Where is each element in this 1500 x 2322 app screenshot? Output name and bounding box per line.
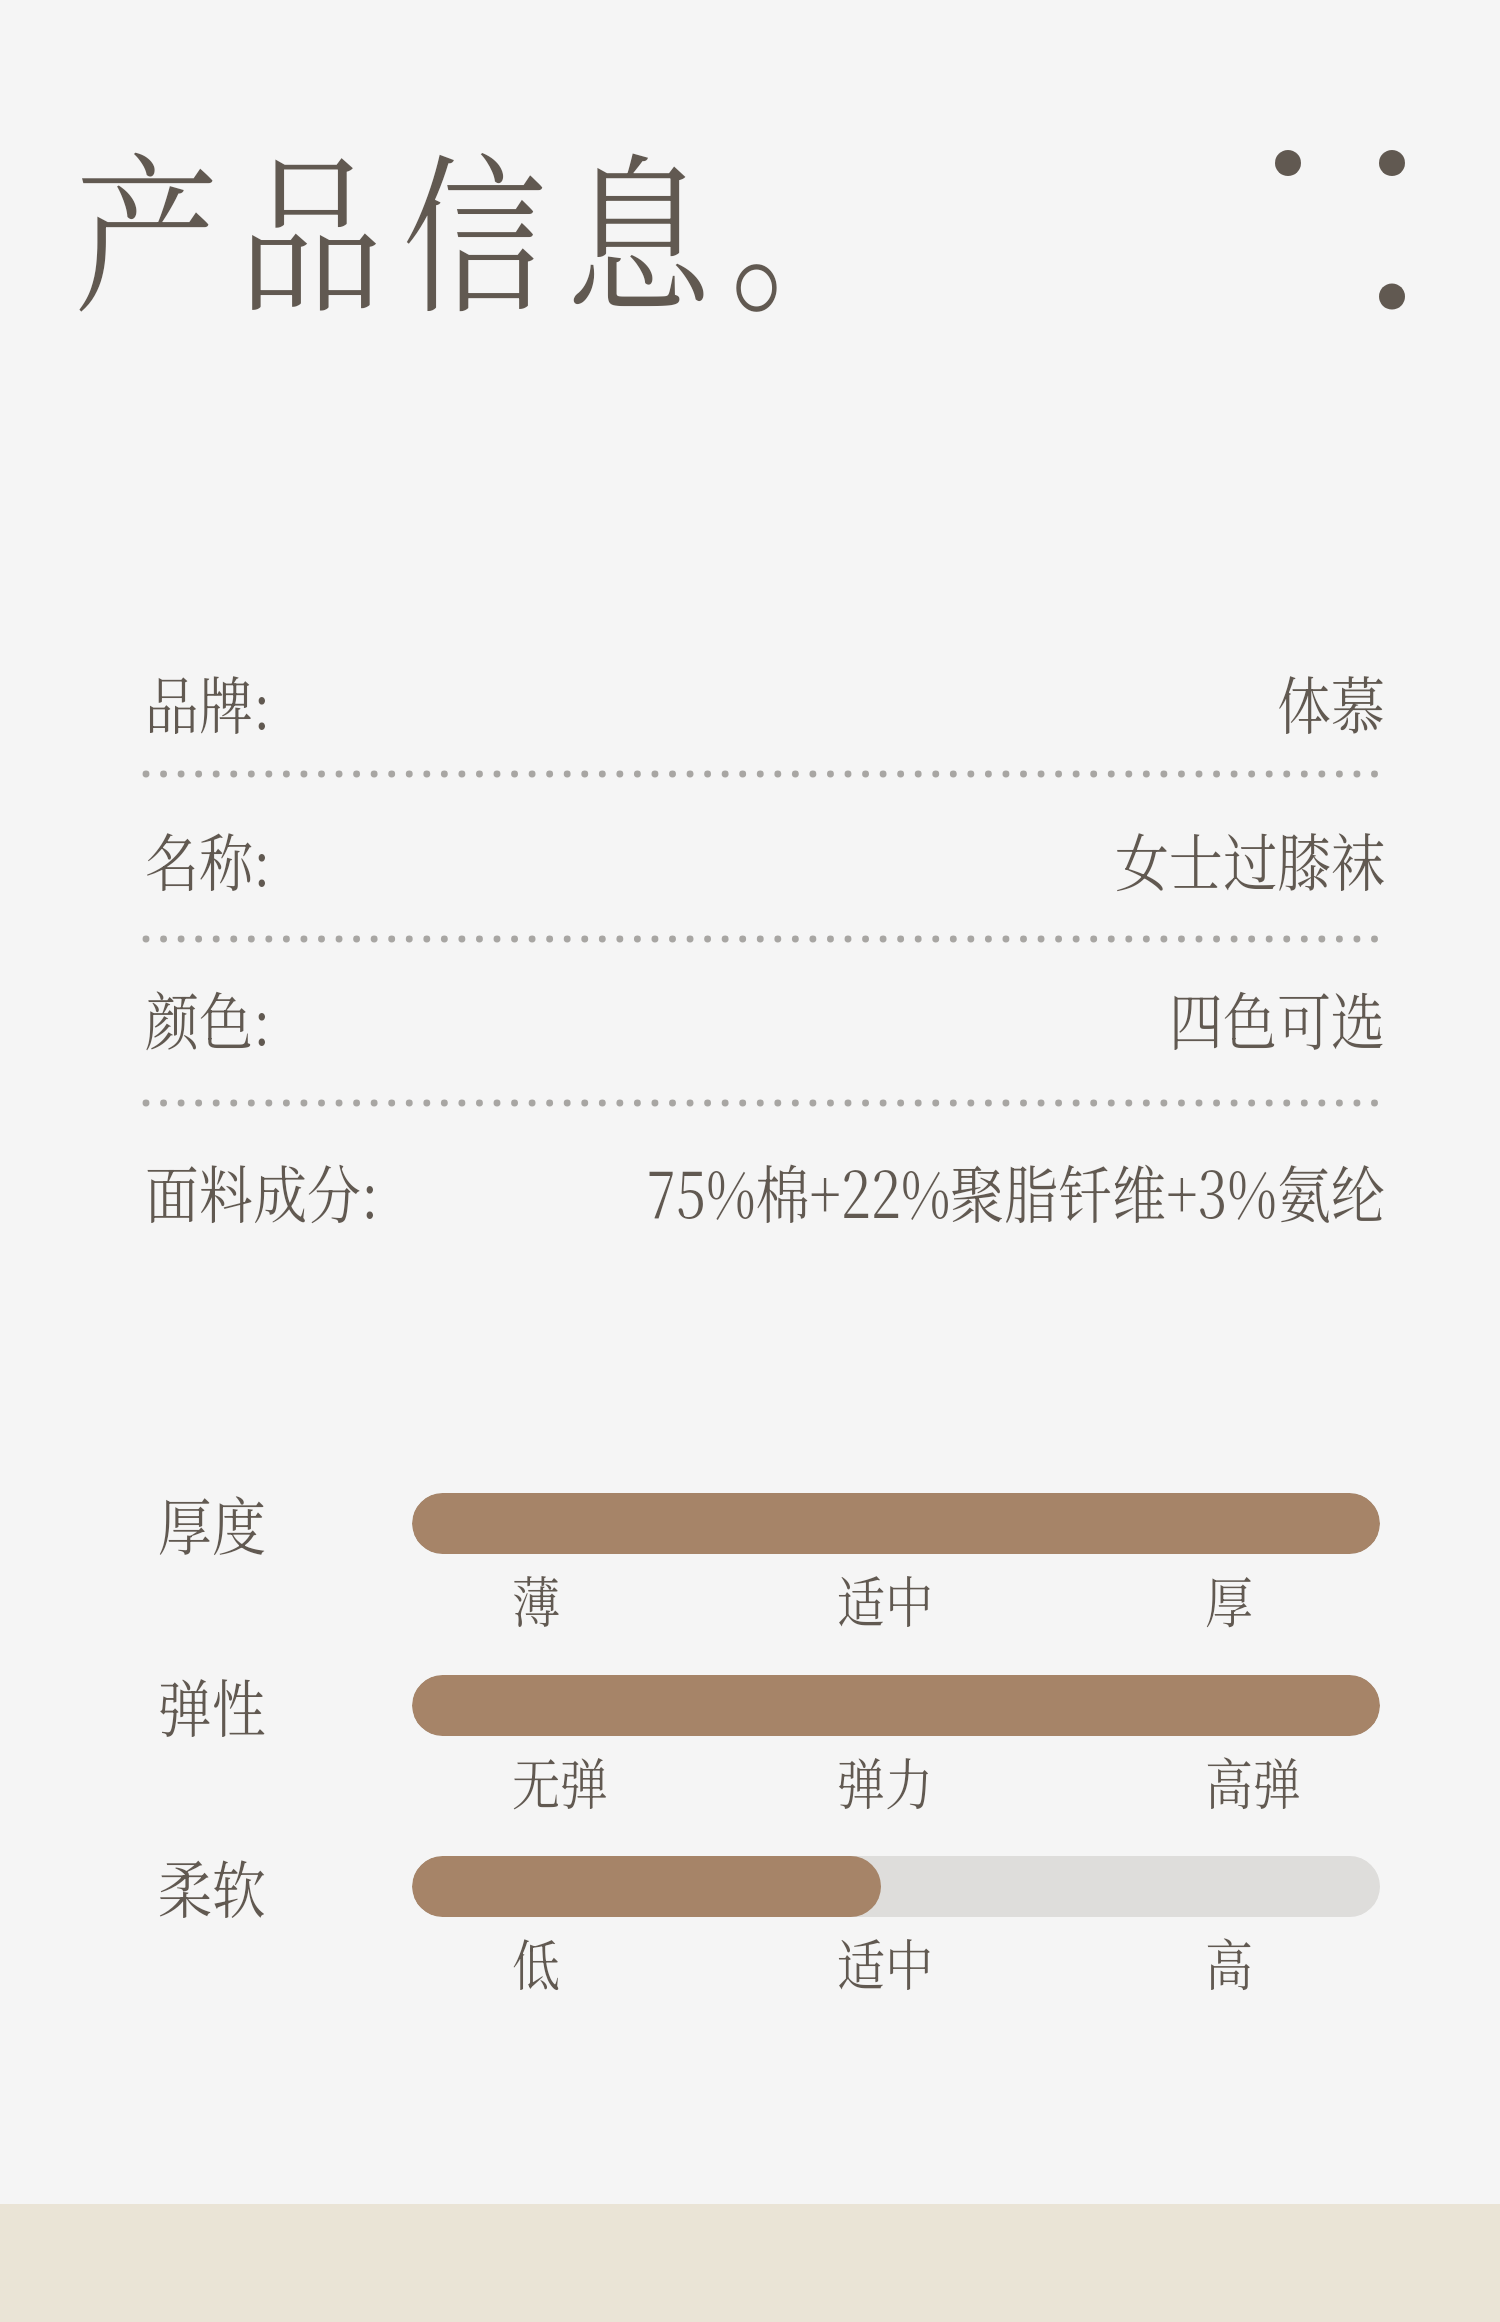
staticText: 适中 bbox=[837, 1559, 934, 1640]
staticText: 柔软 bbox=[158, 1840, 266, 1931]
staticText: 高弹 bbox=[1205, 1741, 1302, 1822]
button[interactable]: 名称: bbox=[0, 813, 1500, 903]
staticText: 厚 bbox=[1205, 1559, 1254, 1640]
staticText: 弹性 bbox=[158, 1659, 266, 1750]
staticText: 女士过膝袜 bbox=[0, 813, 1385, 904]
button[interactable]: 面料成分: bbox=[0, 1145, 1500, 1235]
button[interactable]: 颜色: bbox=[0, 972, 1500, 1062]
staticText: 薄 bbox=[512, 1559, 561, 1640]
button[interactable] bbox=[412, 1856, 1380, 1917]
staticText: 面料成分: bbox=[145, 1145, 379, 1236]
button[interactable] bbox=[412, 1493, 1380, 1554]
staticText: 适中 bbox=[837, 1922, 934, 2003]
staticText: 颜色: bbox=[145, 972, 271, 1063]
button[interactable]: 品牌: bbox=[0, 656, 1500, 746]
staticText: 75%棉+22%聚脂钎维+3%氨纶 bbox=[0, 1145, 1385, 1236]
staticText: 低 bbox=[512, 1922, 561, 2003]
button[interactable] bbox=[412, 1675, 1380, 1736]
staticText: 无弹 bbox=[512, 1741, 609, 1822]
staticText: 高 bbox=[1205, 1922, 1254, 2003]
staticText: 品牌: bbox=[145, 656, 271, 747]
staticText: 名称: bbox=[145, 813, 271, 904]
staticText: 产品信息。 bbox=[74, 101, 894, 346]
staticText: 厚度 bbox=[158, 1477, 266, 1568]
staticText: 弹力 bbox=[837, 1741, 934, 1822]
staticText: 体慕 bbox=[0, 656, 1385, 747]
staticText: 四色可选 bbox=[0, 972, 1385, 1063]
button[interactable]: More options bbox=[1255, 129, 1420, 329]
